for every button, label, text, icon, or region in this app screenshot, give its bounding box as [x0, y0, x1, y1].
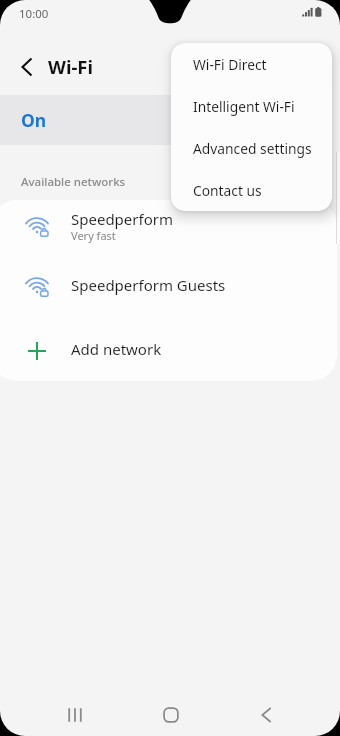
button[interactable]: On	[0, 95, 196, 145]
button[interactable]: Home	[151, 695, 191, 735]
staticText: On	[21, 108, 47, 132]
button[interactable]: Intelligent Wi-Fi	[171, 85, 332, 127]
staticText: Speedperform	[71, 209, 173, 229]
staticText: 10:00	[19, 6, 49, 22]
staticText: Contact us	[193, 181, 262, 200]
staticText: Add network	[71, 339, 162, 359]
staticText: Intelligent Wi-Fi	[193, 97, 295, 116]
button[interactable]: Navigate up	[10, 50, 44, 84]
button[interactable]: Contact us	[171, 169, 332, 211]
staticText: Available networks	[21, 174, 126, 190]
button[interactable]: Speedperform Guests	[0, 260, 335, 320]
button[interactable]: Speedperform	[0, 200, 335, 260]
staticText: Very fast	[71, 228, 116, 243]
button[interactable]: Wi-Fi Direct	[171, 43, 332, 85]
staticText: Wi-Fi Direct	[193, 55, 267, 74]
staticText: Speedperform Guests	[71, 275, 226, 295]
button[interactable]: Back	[246, 695, 286, 735]
button[interactable]: Advanced settings	[171, 127, 332, 169]
button[interactable]: Add network	[0, 320, 335, 380]
staticText: Wi-Fi	[48, 54, 94, 79]
staticText: Advanced settings	[193, 139, 312, 158]
button[interactable]: Recent apps	[55, 695, 95, 735]
